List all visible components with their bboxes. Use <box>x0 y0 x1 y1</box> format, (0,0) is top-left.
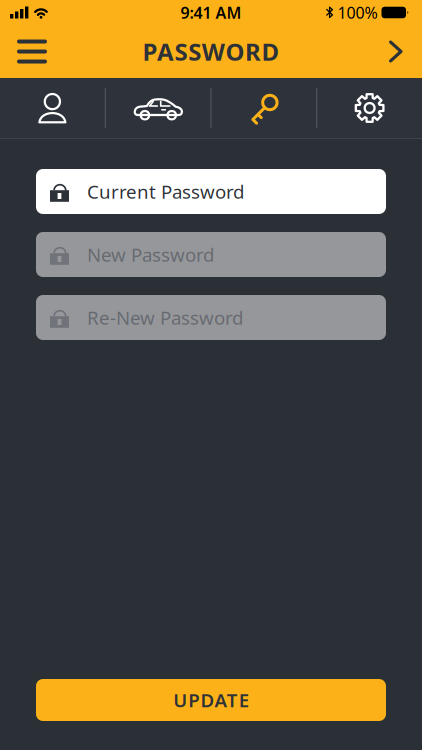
staticText: 100% <box>337 2 377 23</box>
staticText: Re-New Password <box>87 305 243 330</box>
button[interactable]: Menu <box>0 39 47 63</box>
button[interactable]: Settings <box>317 78 422 138</box>
button[interactable]: Forward <box>389 40 422 62</box>
staticText: PASSWORD <box>142 36 280 67</box>
button[interactable]: Profile <box>0 78 105 138</box>
button[interactable]: UPDATE <box>36 679 386 721</box>
button[interactable]: Vehicle <box>106 78 211 138</box>
staticText: Current Password <box>87 179 244 204</box>
button[interactable]: Password <box>211 78 316 138</box>
staticText: 9:41 AM <box>180 2 241 23</box>
button[interactable]: Current Password <box>36 169 386 214</box>
staticText: New Password <box>87 242 214 267</box>
button[interactable]: Re-New Password <box>36 295 386 340</box>
button[interactable]: New Password <box>36 232 386 277</box>
staticText: UPDATE <box>173 688 249 712</box>
